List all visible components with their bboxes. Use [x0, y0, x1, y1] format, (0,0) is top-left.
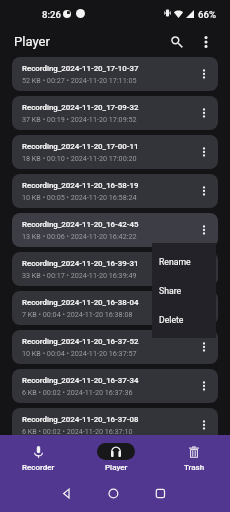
button[interactable]: Player [77, 435, 155, 485]
staticText: Recording_2024-11-20_16-39-31 [22, 259, 139, 268]
staticText: Recording_2024-11-20_16-42-45 [22, 220, 139, 229]
staticText: 8:26 [42, 9, 61, 20]
staticText: Recording_2024-11-20_16-37-52 [22, 337, 139, 346]
staticText: 10 KB • 00:04 • 2024-11-20 16:37:57 [22, 349, 137, 357]
button[interactable]: Recording_2024-11-20_16-37-34 [12, 369, 218, 403]
button[interactable]: Recording_2024-11-20_16-37-08 [12, 408, 218, 442]
staticText: Recording_2024-11-20_16-38-04 [22, 298, 139, 307]
button[interactable]: Recording_2024-11-20_16-37-52 [12, 330, 218, 364]
staticText: Trash [184, 463, 205, 472]
button[interactable]: More options [194, 220, 214, 240]
button[interactable]: More options [194, 337, 214, 357]
staticText: 33 KB • 00:17 • 2024-11-20 16:39:49 [22, 271, 137, 279]
button[interactable]: Recording_2024-11-20_16-58-19 [12, 174, 218, 208]
button[interactable]: Recording_2024-11-20_16-39-31 [12, 252, 218, 286]
staticText: 37 KB • 00:19 • 2024-11-20 17:09:52 [22, 115, 137, 123]
button[interactable]: Recording_2024-11-20_17-09-32 [12, 96, 218, 130]
staticText: Delete [159, 315, 184, 325]
staticText: Recording_2024-11-20_17-09-32 [22, 103, 139, 112]
staticText: 66% [198, 9, 216, 20]
button[interactable]: More options [196, 32, 216, 52]
staticText: Player [105, 463, 128, 472]
button[interactable]: Share [152, 276, 216, 305]
staticText: Player [14, 34, 50, 49]
button[interactable]: Recording_2024-11-20_17-00-11 [12, 135, 218, 169]
staticText: 7 KB • 00:04 • 2024-11-20 16:38:08 [22, 310, 133, 318]
staticText: Recording_2024-11-20_16-58-19 [22, 181, 139, 190]
staticText: Recording_2024-11-20_17-10-37 [22, 64, 139, 73]
button[interactable]: Delete [152, 305, 216, 334]
button[interactable]: Recorder [0, 435, 77, 485]
button[interactable]: Trash [155, 435, 230, 485]
staticText: 52 KB • 00:27 • 2024-11-20 17:11:05 [22, 76, 137, 84]
staticText: 10 KB • 00:05 • 2024-11-20 16:58:24 [22, 193, 137, 201]
button[interactable]: More options [194, 64, 214, 84]
button[interactable]: More options [194, 415, 214, 435]
button[interactable]: Recording_2024-11-20_17-10-37 [12, 57, 218, 91]
button[interactable]: Recording_2024-11-20_16-42-45 [12, 213, 218, 247]
button[interactable]: More options [194, 103, 214, 123]
staticText: Rename [159, 257, 191, 267]
button[interactable]: More options [194, 181, 214, 201]
button[interactable]: Recording_2024-11-20_16-38-04 [12, 291, 218, 325]
staticText: 6 KB • 00:02 • 2024-11-20 16:37:10 [22, 427, 133, 435]
staticText: 13 KB • 00:06 • 2024-11-20 16:42:22 [22, 232, 137, 240]
button[interactable]: Search [167, 32, 187, 52]
button[interactable]: More options [194, 142, 214, 162]
staticText: 6 KB • 00:02 • 2024-11-20 16:37:36 [22, 388, 133, 396]
staticText: Recording_2024-11-20_17-00-11 [22, 142, 139, 151]
staticText: Recording_2024-11-20_16-37-08 [22, 415, 139, 424]
staticText: 18 KB • 00:10 • 2024-11-20 17:00:20 [22, 154, 137, 162]
button[interactable]: More options [194, 376, 214, 396]
staticText: Share [159, 286, 182, 296]
staticText: Recorder [22, 463, 55, 472]
staticText: Recording_2024-11-20_16-37-34 [22, 376, 139, 385]
button[interactable]: Rename [152, 247, 216, 276]
